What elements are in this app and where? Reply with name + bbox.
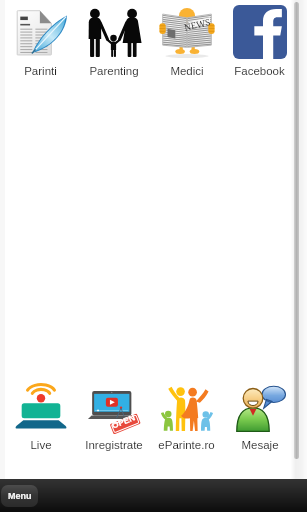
- staticText: NEWS: [183, 15, 212, 33]
- staticText: Medici: [170, 65, 204, 78]
- staticText: Live: [30, 439, 52, 452]
- button[interactable]: eParinte.ro: [150, 379, 223, 452]
- button[interactable]: NEWS: [150, 4, 223, 78]
- staticText: Menu: [8, 491, 32, 501]
- button[interactable]: Live: [4, 379, 77, 452]
- staticText: Parinti: [24, 65, 57, 78]
- staticText: Facebook: [234, 65, 285, 78]
- staticText: Mesaje: [241, 439, 279, 452]
- button[interactable]: Parinti: [4, 4, 77, 78]
- button[interactable]: Mesaje: [223, 379, 296, 452]
- staticText: Inregistrate: [85, 439, 143, 452]
- staticText: eParinte.ro: [158, 439, 215, 452]
- staticText: Parenting: [89, 65, 139, 78]
- button[interactable]: Parenting: [77, 4, 150, 78]
- button[interactable]: Menu: [1, 485, 38, 507]
- button[interactable]: Facebook: [223, 4, 296, 78]
- staticText: OPEN: [110, 412, 137, 430]
- button[interactable]: OPEN: [77, 379, 150, 452]
